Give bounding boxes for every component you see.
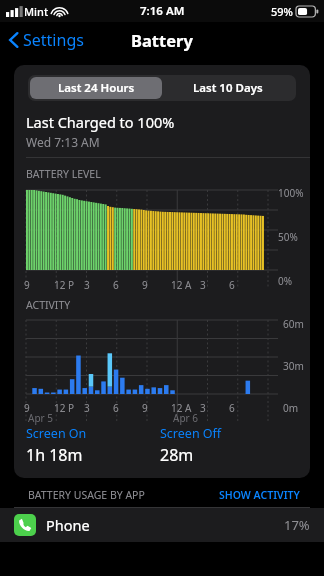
staticText: Screen On [26, 425, 87, 442]
button[interactable]: Screen On [26, 425, 160, 466]
staticText: 100% [278, 186, 304, 200]
staticText: Last 24 Hours [58, 80, 135, 96]
staticText: 3 [84, 401, 90, 415]
staticText: 12 A [171, 401, 192, 415]
staticText: 9 [24, 401, 30, 415]
staticText: 6 [229, 278, 235, 292]
staticText: 3 [200, 278, 206, 292]
staticText: 6 [229, 401, 235, 415]
staticText: Phone [46, 515, 90, 535]
staticText: ACTIVITY [26, 298, 71, 312]
staticText: Battery [131, 29, 193, 51]
staticText: Wed 7:13 AM [26, 134, 100, 150]
staticText: 9 [142, 401, 148, 415]
staticText: 9 [24, 278, 30, 292]
button[interactable]: SHOW ACTIVITY [219, 488, 300, 502]
staticText: 6 [113, 278, 119, 292]
staticText: 6 [113, 401, 119, 415]
staticText: Last 10 Days [193, 80, 263, 96]
button[interactable]: Last 10 Days [162, 77, 294, 99]
button[interactable]: Phone [14, 508, 310, 542]
staticText: 30m [283, 359, 304, 373]
staticText: Mint [24, 4, 49, 19]
staticText: 7:16 AM [140, 3, 185, 19]
staticText: SHOW ACTIVITY [219, 488, 300, 502]
staticText: 50% [278, 230, 298, 244]
staticText: 12 P [54, 401, 75, 415]
staticText: 59% [271, 4, 293, 19]
staticText: 9 [142, 278, 148, 292]
staticText: Last Charged to 100% [26, 112, 175, 132]
staticText: 3 [84, 278, 90, 292]
staticText: Settings [23, 29, 84, 51]
staticText: BATTERY LEVEL [26, 167, 101, 181]
staticText: Apr 5 [28, 411, 53, 425]
staticText: 12 P [54, 278, 75, 292]
staticText: 1h 18m [26, 444, 83, 466]
staticText: 3 [200, 401, 206, 415]
staticText: 12 A [171, 278, 192, 292]
staticText: 0% [278, 274, 293, 288]
staticText: BATTERY USAGE BY APP [28, 488, 145, 502]
staticText: 28m [160, 444, 194, 466]
staticText: Screen Off [160, 425, 222, 442]
staticText: 17% [284, 516, 310, 534]
button[interactable]: Last 24 Hours [30, 77, 162, 99]
staticText: Apr 6 [173, 411, 198, 425]
staticText: 0m [283, 401, 299, 415]
button[interactable]: Screen Off [160, 425, 310, 466]
button[interactable]: Settings [8, 29, 84, 51]
staticText: 60m [283, 317, 304, 331]
